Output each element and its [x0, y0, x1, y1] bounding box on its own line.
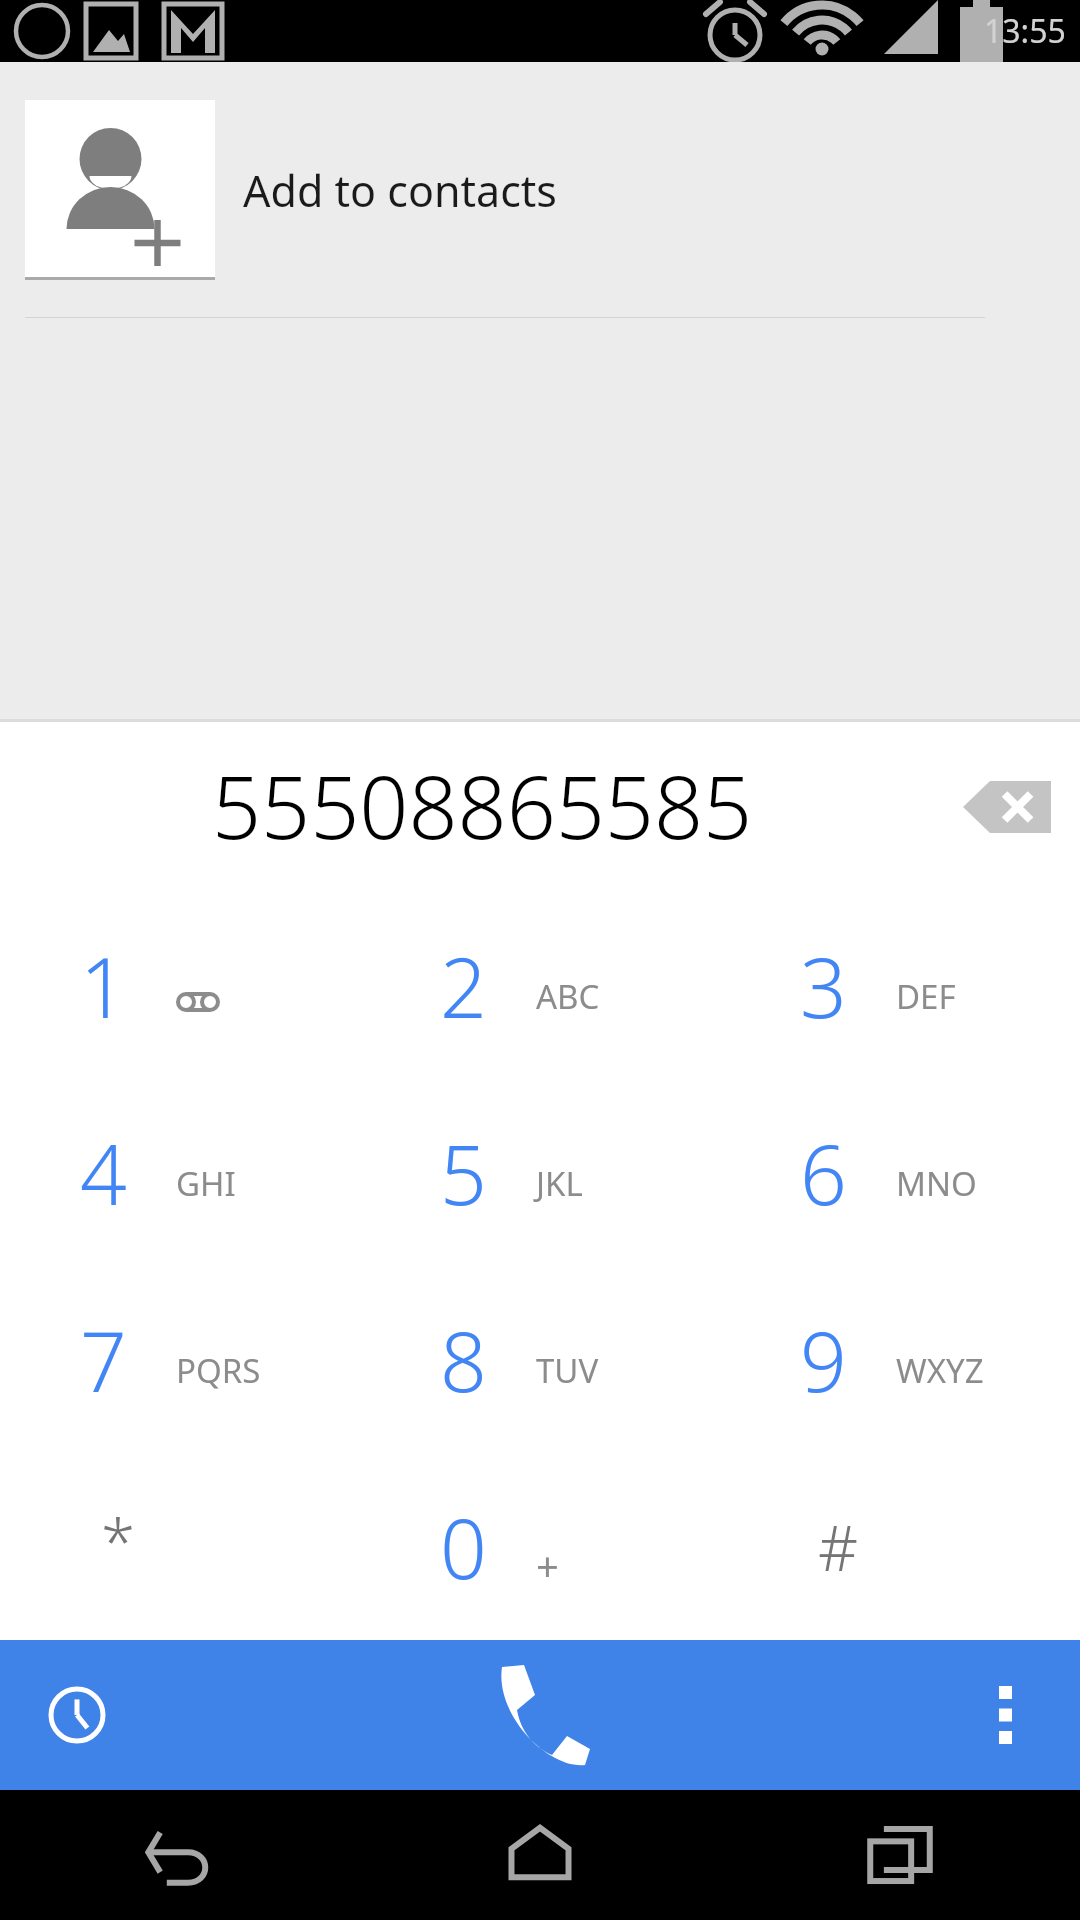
button[interactable]: # [720, 1453, 1080, 1640]
button[interactable]: 9 [720, 1266, 1080, 1453]
staticText: PQRS [176, 1348, 261, 1393]
button[interactable]: More options [950, 1660, 1060, 1770]
staticText: 3 [800, 930, 847, 1042]
staticText: + [536, 1538, 559, 1592]
button[interactable]: Back [0, 1790, 360, 1920]
button[interactable]: 3 [720, 892, 1080, 1079]
staticText: * [101, 1499, 136, 1583]
button[interactable]: 5 [360, 1079, 720, 1266]
button[interactable]: 7 [0, 1266, 360, 1453]
staticText: WXYZ [896, 1348, 984, 1393]
staticText: 2 [440, 930, 487, 1042]
button[interactable]: Call [455, 1640, 625, 1790]
staticText: DEF [896, 974, 956, 1019]
staticText: GHI [176, 1161, 236, 1206]
button[interactable]: 8 [360, 1266, 720, 1453]
button[interactable]: 4 [0, 1079, 360, 1266]
staticText: JKL [536, 1161, 583, 1206]
staticText: 6 [800, 1117, 847, 1229]
staticText: # [818, 1505, 859, 1589]
staticText: 9 [800, 1304, 847, 1416]
staticText: TUV [536, 1348, 599, 1393]
staticText: 5 [440, 1117, 487, 1229]
staticText: 1 [80, 930, 127, 1042]
button[interactable]: 2 [360, 892, 720, 1079]
staticText: 8 [440, 1304, 487, 1416]
button[interactable]: 6 [720, 1079, 1080, 1266]
button[interactable]: Add to contacts [0, 62, 1080, 318]
staticText: MNO [896, 1161, 977, 1206]
button[interactable]: 1 [0, 892, 360, 1079]
staticText: 0 [440, 1491, 487, 1603]
staticText: Add to contacts [243, 161, 557, 220]
button[interactable]: 0 [360, 1453, 720, 1640]
button[interactable]: Recent apps [720, 1790, 1080, 1920]
staticText: 7 [80, 1304, 127, 1416]
staticText: 55508865585 [212, 747, 753, 864]
staticText: 13:55 [984, 9, 1066, 53]
button[interactable]: Call history [22, 1660, 132, 1770]
staticText: ABC [536, 974, 600, 1019]
button[interactable]: Delete [942, 747, 1072, 867]
staticText: 4 [80, 1117, 127, 1229]
button[interactable]: * [0, 1453, 360, 1640]
button[interactable]: Home [360, 1790, 720, 1920]
